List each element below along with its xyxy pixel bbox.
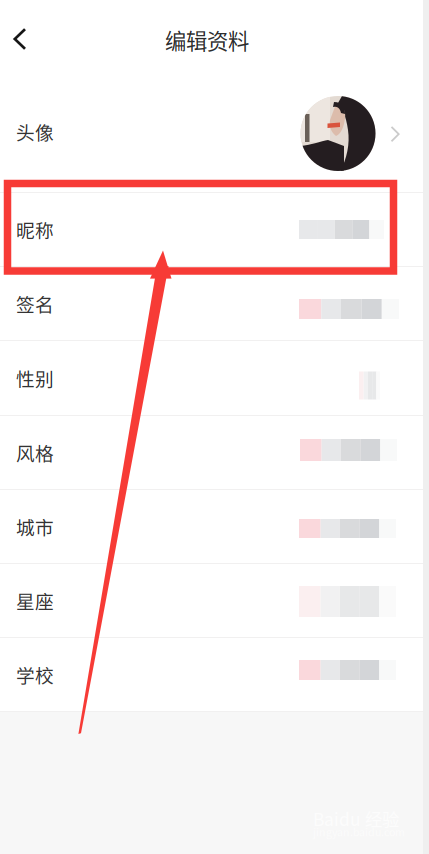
staticText: 风格 bbox=[16, 439, 54, 466]
staticText: 城市 bbox=[16, 513, 54, 540]
button[interactable]: 头像 bbox=[0, 95, 423, 192]
button[interactable]: 风格 bbox=[0, 416, 423, 489]
staticText: 签名 bbox=[16, 290, 54, 317]
staticText: 性别 bbox=[16, 364, 54, 391]
staticText: 编辑资料 bbox=[165, 25, 249, 55]
staticText: 头像 bbox=[16, 118, 54, 145]
button[interactable]: 签名 bbox=[0, 267, 423, 340]
button[interactable]: 性别 bbox=[0, 341, 423, 415]
button[interactable]: 星座 bbox=[0, 564, 423, 637]
staticText: 昵称 bbox=[16, 216, 54, 243]
staticText: 星座 bbox=[16, 587, 54, 614]
button[interactable]: 昵称 bbox=[0, 193, 423, 266]
button[interactable]: Back bbox=[0, 16, 43, 62]
button[interactable]: 学校 bbox=[0, 638, 423, 711]
button[interactable]: 城市 bbox=[0, 490, 423, 563]
staticText: 学校 bbox=[16, 661, 54, 688]
